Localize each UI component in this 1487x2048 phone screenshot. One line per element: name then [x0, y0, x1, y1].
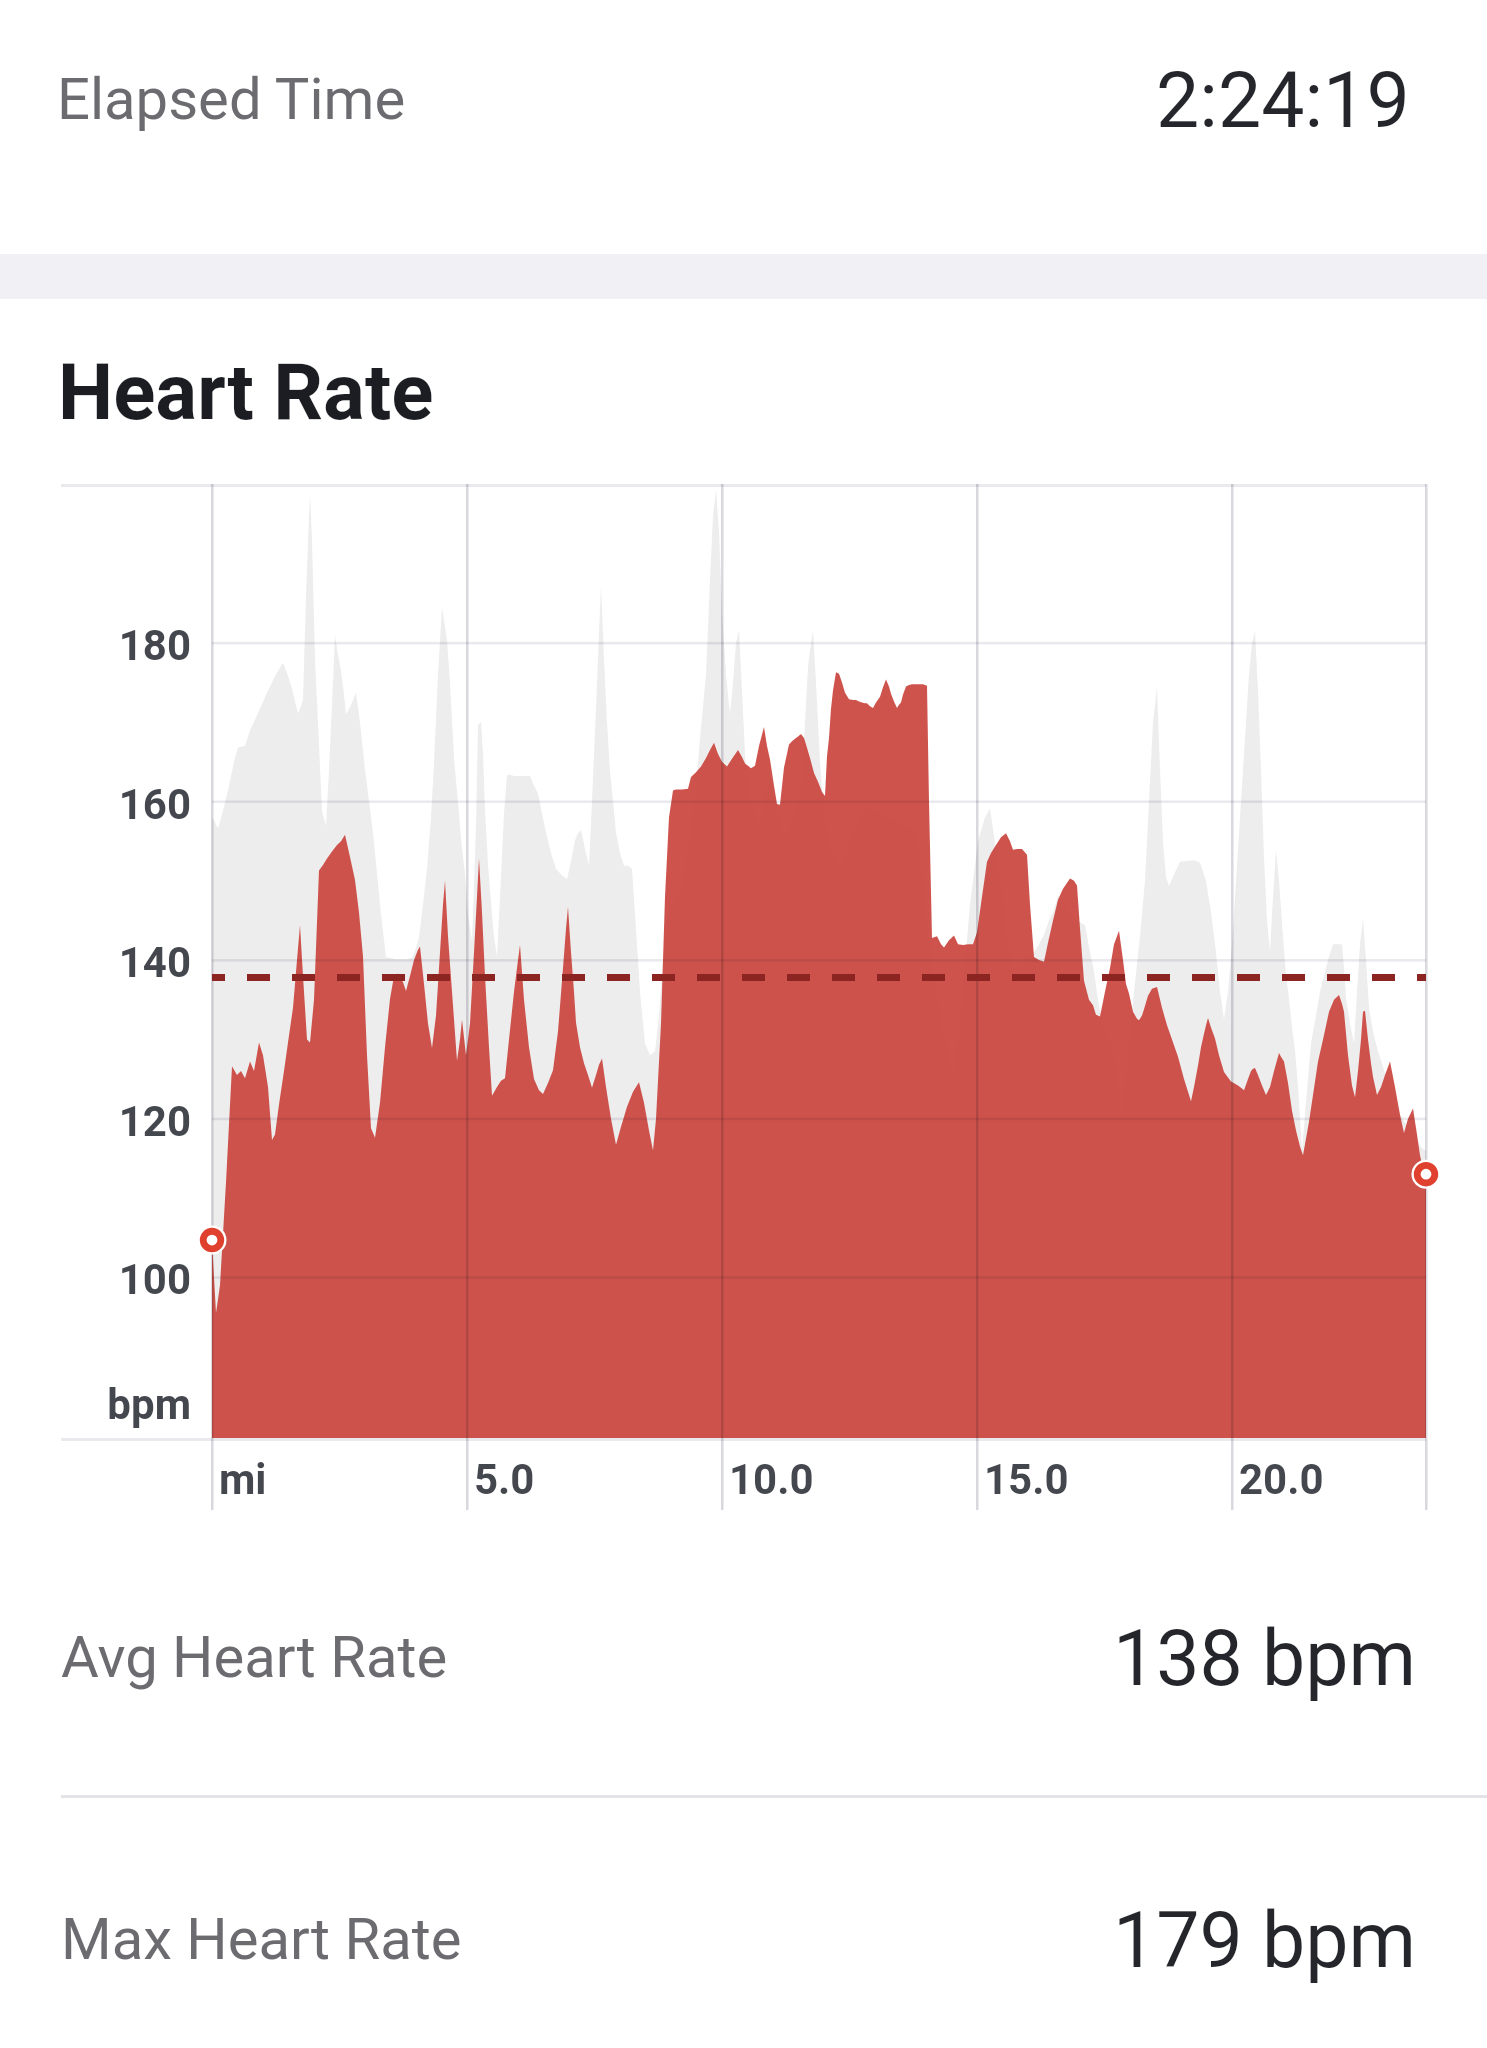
button[interactable]: Heart rate chart over distance [0, 448, 1487, 1516]
button[interactable]: Avg Heart Rate [0, 1516, 1487, 1795]
staticText: Elapsed Time [57, 65, 406, 133]
staticText: 2:24:19 [1156, 56, 1410, 146]
staticText: 15.0 [984, 1455, 1069, 1504]
staticText: 20.0 [1239, 1455, 1324, 1504]
staticText: mi [219, 1455, 267, 1504]
staticText: 5.0 [474, 1455, 535, 1504]
staticText: Heart Rate [58, 347, 434, 438]
staticText: 10.0 [729, 1455, 814, 1504]
staticText: bpm [0, 1380, 191, 1429]
staticText: 100 [0, 1255, 191, 1304]
staticText: Max Heart Rate [61, 1905, 462, 1973]
staticText: 180 [0, 621, 191, 670]
staticText: 160 [0, 780, 191, 829]
staticText: 138 bpm [1113, 1614, 1416, 1704]
button[interactable]: Elapsed Time [0, 0, 1487, 254]
button[interactable]: Max Heart Rate [0, 1798, 1487, 2048]
staticText: Avg Heart Rate [61, 1623, 448, 1691]
staticText: 120 [0, 1097, 191, 1146]
staticText: 140 [0, 938, 191, 987]
staticText: 179 bpm [1113, 1896, 1416, 1986]
